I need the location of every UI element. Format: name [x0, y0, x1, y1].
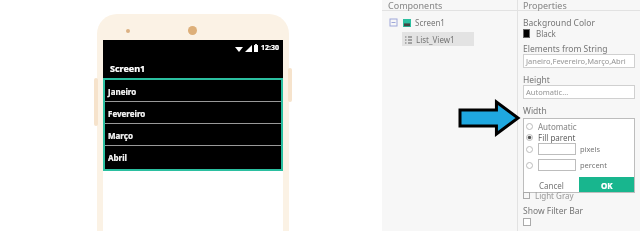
staticText: Março: [108, 130, 133, 141]
staticText: Cancel: [539, 180, 564, 191]
staticText: Components: [388, 0, 443, 11]
button[interactable]: Janeiro: [105, 80, 281, 102]
staticText: Automatic...: [526, 87, 569, 97]
button[interactable]: Black: [523, 28, 556, 39]
staticText: Black: [536, 28, 556, 39]
other: Pointer arrow: [458, 100, 520, 136]
staticText: 12:30: [261, 43, 279, 53]
button[interactable]: Janeiro: [103, 78, 283, 171]
staticText: Properties: [523, 0, 567, 11]
staticText: Abril: [108, 152, 127, 163]
staticText: Width: [523, 105, 547, 117]
staticText: OK: [601, 180, 613, 191]
button[interactable]: OK: [579, 177, 635, 193]
staticText: percent: [580, 160, 607, 170]
staticText: Janeiro: [108, 86, 137, 97]
button[interactable]: Automatic: [526, 121, 577, 132]
button[interactable]: Janeiro,Fevereiro,Março,Abri: [526, 54, 635, 68]
button[interactable]: Março: [105, 124, 281, 146]
staticText: Screen1: [110, 62, 146, 74]
staticText: Janeiro,Fevereiro,Março,Abri: [526, 56, 626, 66]
staticText: Automatic: [538, 121, 577, 132]
button[interactable]: Cancel: [523, 177, 579, 193]
staticText: Elements from String: [523, 43, 608, 55]
button[interactable]: List_View1: [405, 32, 474, 46]
button[interactable]: Fill parent: [526, 132, 576, 143]
button[interactable]: [523, 218, 531, 226]
button[interactable]: Fevereiro: [105, 102, 281, 124]
staticText: pixels: [580, 144, 601, 154]
other: Collapse: [390, 19, 397, 26]
staticText: Light Gray: [535, 190, 574, 201]
staticText: Height: [523, 74, 550, 86]
staticText: Fill parent: [538, 132, 576, 143]
staticText: Fevereiro: [108, 108, 146, 119]
staticText: List_View1: [416, 34, 455, 45]
button[interactable]: Automatic...: [526, 85, 635, 99]
staticText: Show Filter Bar: [523, 205, 583, 217]
button[interactable]: Abril: [105, 146, 281, 168]
staticText: Background Color: [523, 17, 595, 29]
staticText: Screen1: [415, 17, 445, 28]
